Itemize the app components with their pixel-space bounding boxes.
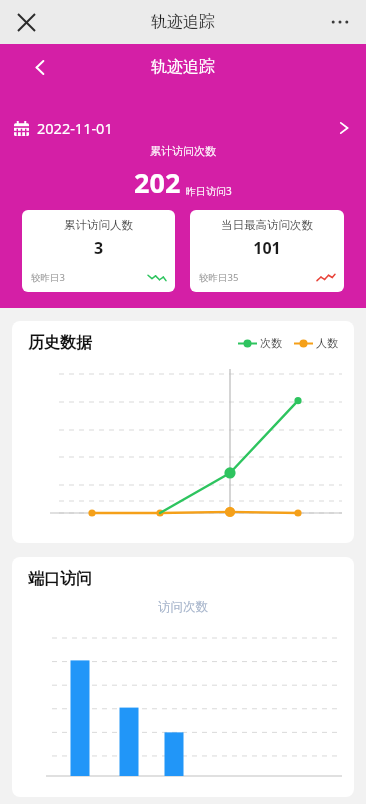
staticText: 昨日访问3 [186,184,232,198]
staticText: 次数 [260,336,282,350]
staticText: 访问次数 [158,599,208,615]
button[interactable]: 当日最高访问次数 [190,210,344,292]
staticText: 轨迹追踪 [151,57,215,77]
staticText: 2022-11-01 [37,118,113,138]
button[interactable]: 2022-11-01 [0,112,366,144]
staticText: 轨迹追踪 [151,12,215,32]
staticText: 3 [31,237,166,259]
staticText: 累计访问次数 [150,144,216,158]
staticText: 101 [199,237,335,259]
staticText: 较昨日35 [199,271,239,284]
staticText: 202 [134,164,181,201]
staticText: 历史数据 [28,333,92,353]
staticText: 累计访问人数 [31,218,166,232]
button[interactable]: Close [8,4,44,40]
button[interactable]: Back [24,51,56,83]
staticText: 较昨日3 [31,271,65,284]
button[interactable]: 端口访问 [12,557,354,797]
button[interactable]: 历史数据 [12,321,354,543]
staticText: 人数 [316,336,338,350]
staticText: 端口访问 [28,569,92,589]
button[interactable]: More options [322,4,358,40]
button[interactable]: 累计访问人数 [22,210,175,292]
staticText: 当日最高访问次数 [199,218,335,232]
